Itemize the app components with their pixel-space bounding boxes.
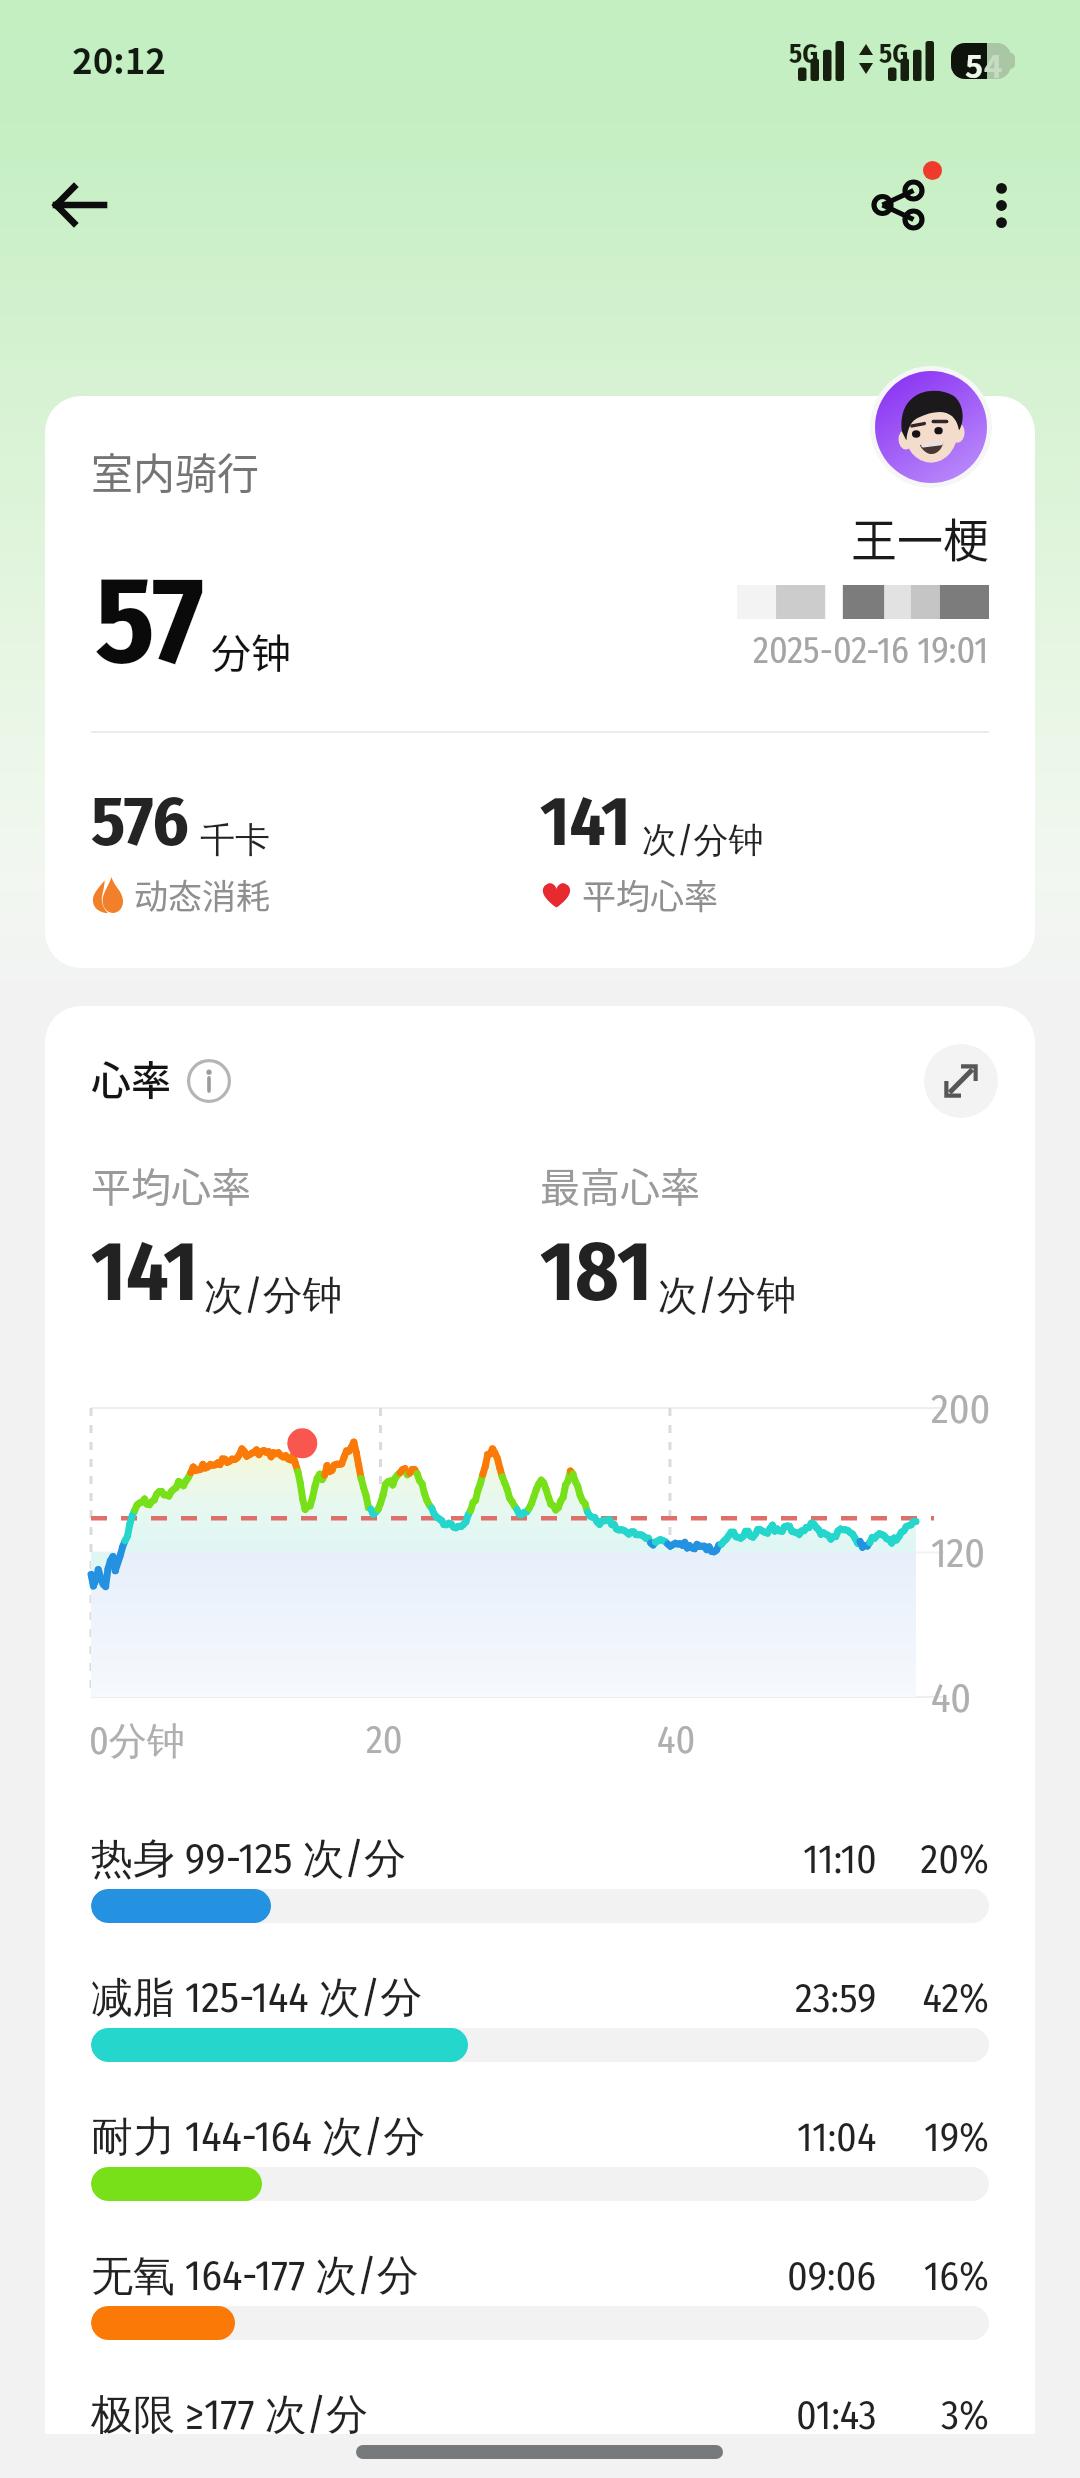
staticText: 最高心率 xyxy=(540,1156,700,1214)
staticText: 分钟 xyxy=(211,622,291,680)
staticText: 极限 ≥177 次/分 xyxy=(91,2389,369,2434)
staticText: 室内骑行 xyxy=(91,440,260,501)
staticText: 5G xyxy=(789,38,819,70)
button[interactable]: Share xyxy=(846,155,950,255)
staticText: 0分钟 xyxy=(89,1717,185,1765)
staticText: 181 xyxy=(540,1222,653,1322)
staticText: 11:10 xyxy=(803,1836,877,1884)
staticText: 千卡 xyxy=(200,818,270,862)
button[interactable]: 减脂 125-144 次/分 xyxy=(91,1972,989,2111)
staticText: 无氧 164-177 次/分 xyxy=(91,2250,419,2303)
staticText: 平均心率 xyxy=(91,1156,251,1214)
button[interactable]: 无氧 164-177 次/分 xyxy=(91,2250,989,2389)
staticText: 141 xyxy=(91,1222,199,1322)
staticText: 3% xyxy=(877,2392,989,2434)
staticText: 5 xyxy=(965,42,984,78)
staticText: 5G xyxy=(879,38,909,70)
staticText: 动态消耗 xyxy=(134,870,270,919)
staticText: 王一梗 xyxy=(851,504,989,571)
staticText: 2025-02-16 19:01 xyxy=(753,629,989,672)
button[interactable]: 耐力 144-164 次/分 xyxy=(91,2111,989,2250)
staticText: 01:43 xyxy=(796,2392,877,2434)
button[interactable]: 极限 ≥177 次/分 xyxy=(91,2389,989,2434)
staticText: 200 xyxy=(931,1386,991,1434)
staticText: 57 xyxy=(95,548,205,694)
staticText: 次/分钟 xyxy=(658,1270,797,1320)
button[interactable]: 热身 99-125 次/分 xyxy=(91,1833,989,1972)
staticText: 心率 xyxy=(91,1049,171,1107)
staticText: 141 xyxy=(540,780,631,864)
button[interactable]: 室内骑行 xyxy=(45,396,1035,968)
staticText: 20 xyxy=(366,1717,403,1763)
staticText: 42% xyxy=(877,1975,989,2023)
button[interactable]: Back xyxy=(28,155,128,255)
staticText: 576 xyxy=(91,780,189,864)
staticText: 热身 99-125 次/分 xyxy=(91,1833,406,1886)
staticText: 20% xyxy=(877,1836,989,1884)
staticText: 次/分钟 xyxy=(642,818,764,862)
staticText: 4 xyxy=(984,42,1003,78)
staticText: 耐力 144-164 次/分 xyxy=(91,2111,426,2164)
button[interactable]: Expand chart xyxy=(924,1044,998,1118)
staticText: 40 xyxy=(657,1717,696,1763)
staticText: 11:04 xyxy=(797,2114,877,2162)
staticText: 23:59 xyxy=(795,1975,877,2023)
staticText: 16% xyxy=(877,2253,989,2301)
staticText: 19% xyxy=(877,2114,989,2162)
button[interactable]: More options xyxy=(951,155,1051,255)
staticText: 20:12 xyxy=(72,33,166,84)
staticText: 09:06 xyxy=(787,2253,877,2301)
staticText: 减脂 125-144 次/分 xyxy=(91,1972,423,2025)
staticText: 40 xyxy=(931,1675,972,1723)
staticText: 平均心率 xyxy=(582,870,718,919)
staticText: 120 xyxy=(931,1530,986,1578)
staticText: 次/分钟 xyxy=(204,1270,343,1320)
